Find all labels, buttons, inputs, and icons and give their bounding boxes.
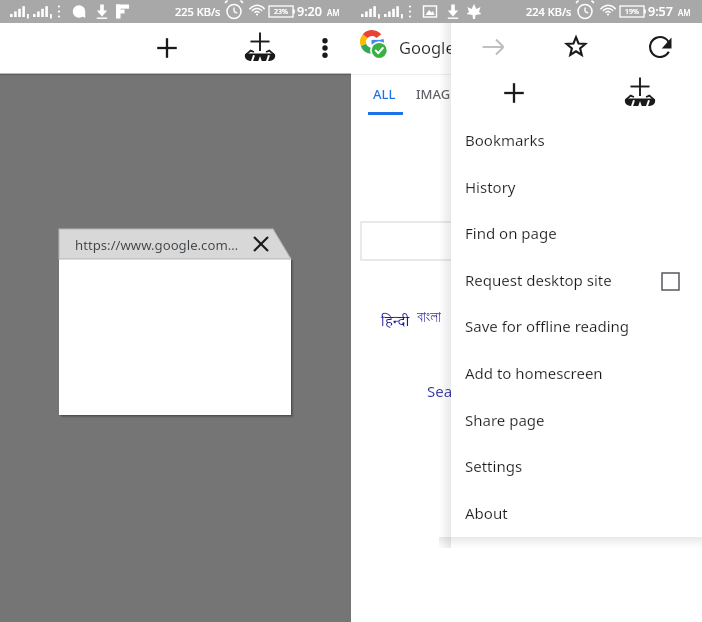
button[interactable]: Add to homescreen <box>451 351 702 398</box>
button[interactable]: Bookmark <box>556 27 596 67</box>
staticText: AM <box>327 7 340 18</box>
staticText: Sea <box>427 381 453 401</box>
button[interactable]: New tab <box>494 73 534 113</box>
button[interactable]: Save for offline reading <box>451 304 702 351</box>
button[interactable]: Share page <box>451 398 702 445</box>
staticText: 224 KB/s <box>526 4 572 19</box>
button[interactable]: History <box>451 165 702 212</box>
staticText: 225 KB/s <box>175 4 221 19</box>
button[interactable]: New incognito tab <box>620 73 660 113</box>
staticText: Save for offline reading <box>465 316 630 336</box>
staticText: Settings <box>465 456 523 476</box>
button[interactable]: Request desktop site <box>451 258 702 305</box>
button[interactable]: More options <box>305 28 345 68</box>
staticText: ALL <box>373 85 396 103</box>
staticText: Bookmarks <box>465 130 545 150</box>
staticText: About <box>465 503 508 523</box>
staticText: 9:57 <box>648 3 673 20</box>
button[interactable]: New tab <box>147 28 187 68</box>
button[interactable]: Reload <box>640 27 680 67</box>
staticText: Request desktop site <box>465 270 612 290</box>
staticText: বাংলা <box>417 310 441 325</box>
staticText: Google <box>399 36 455 58</box>
staticText: History <box>465 177 516 197</box>
staticText: Add to homescreen <box>465 363 603 383</box>
button[interactable]: New incognito tab <box>240 28 280 68</box>
button[interactable]: Find on page <box>451 211 702 258</box>
button[interactable]: Forward <box>473 27 513 67</box>
staticText: IMAGE <box>416 85 458 103</box>
button[interactable]: Close tab <box>247 230 275 258</box>
button[interactable]: Bookmarks <box>451 118 702 165</box>
staticText: 23% <box>274 7 288 17</box>
staticText: 19% <box>625 7 639 17</box>
button[interactable]: Settings <box>451 444 702 491</box>
staticText: Find on page <box>465 223 557 243</box>
staticText: AM <box>678 7 691 18</box>
staticText: हिन्दी <box>381 310 410 330</box>
staticText: 9:20 <box>297 3 322 20</box>
button[interactable]: About <box>451 491 702 538</box>
staticText: Share page <box>465 410 545 430</box>
staticText: https://www.google.com… <box>75 236 239 254</box>
